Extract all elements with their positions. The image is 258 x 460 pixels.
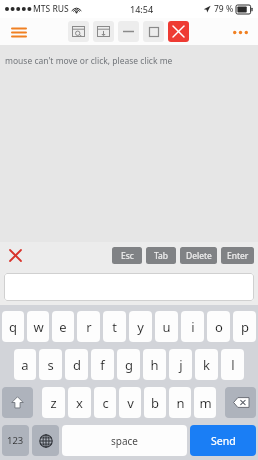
- staticText: w: [33, 318, 44, 336]
- button[interactable]: Delete: [180, 247, 217, 264]
- button[interactable]: u: [155, 311, 178, 342]
- button[interactable]: Menu: [8, 21, 30, 43]
- button[interactable]: t: [103, 311, 126, 342]
- staticText: f: [100, 356, 105, 374]
- button[interactable]: r: [77, 311, 100, 342]
- staticText: MTS RUS: [33, 3, 69, 15]
- button[interactable]: s: [39, 349, 62, 380]
- staticText: i: [191, 318, 195, 336]
- staticText: c: [102, 394, 109, 412]
- button[interactable]: l: [221, 349, 244, 380]
- button[interactable]: e: [52, 311, 74, 342]
- staticText: l: [231, 356, 235, 374]
- button[interactable]: g: [117, 349, 140, 380]
- staticText: Send: [211, 434, 236, 448]
- staticText: Esc: [121, 250, 134, 262]
- staticText: 123: [7, 434, 24, 447]
- button[interactable]: v: [119, 387, 141, 418]
- staticText: v: [127, 394, 134, 412]
- button[interactable]: k: [195, 349, 218, 380]
- staticText: b: [151, 394, 159, 412]
- button[interactable]: 123: [2, 425, 29, 456]
- button[interactable]: x: [68, 387, 91, 418]
- button[interactable]: d: [65, 349, 88, 380]
- staticText: q: [9, 318, 17, 336]
- button[interactable]: b: [144, 387, 166, 418]
- staticText: 79 %: [214, 3, 234, 15]
- button[interactable]: [4, 273, 254, 301]
- staticText: Delete: [186, 250, 212, 262]
- staticText: h: [150, 356, 159, 374]
- button[interactable]: c: [94, 387, 116, 418]
- staticText: s: [47, 356, 54, 374]
- button[interactable]: Esc: [112, 247, 142, 264]
- staticText: o: [215, 318, 223, 336]
- button[interactable]: j: [169, 349, 192, 380]
- button[interactable]: Shift: [2, 387, 33, 418]
- button[interactable]: q: [2, 311, 24, 342]
- staticText: x: [76, 394, 83, 412]
- button[interactable]: Close: [168, 21, 189, 42]
- button[interactable]: h: [143, 349, 166, 380]
- staticText: a: [21, 356, 29, 374]
- staticText: space: [111, 434, 138, 448]
- button[interactable]: Download window: [93, 21, 114, 42]
- button[interactable]: a: [14, 349, 36, 380]
- button[interactable]: Backspace: [225, 387, 256, 418]
- button[interactable]: Enter: [221, 247, 254, 264]
- button[interactable]: Tab: [146, 247, 176, 264]
- button[interactable]: Minimize: [118, 21, 139, 42]
- staticText: g: [125, 356, 133, 374]
- button[interactable]: n: [169, 387, 191, 418]
- staticText: u: [162, 318, 171, 336]
- staticText: e: [59, 318, 67, 336]
- staticText: n: [176, 394, 185, 412]
- button[interactable]: Maximize: [143, 21, 164, 42]
- button[interactable]: w: [27, 311, 49, 342]
- button[interactable]: y: [129, 311, 152, 342]
- staticText: 14:54: [130, 3, 154, 15]
- staticText: z: [50, 394, 57, 412]
- staticText: y: [137, 318, 144, 336]
- staticText: mouse can't move or click, please click …: [5, 55, 173, 67]
- staticText: j: [179, 356, 183, 374]
- button[interactable]: Send: [190, 425, 256, 456]
- button[interactable]: m: [194, 387, 216, 418]
- staticText: Tab: [154, 250, 169, 262]
- button[interactable]: Close keyboard: [6, 246, 24, 264]
- button[interactable]: p: [233, 311, 256, 342]
- button[interactable]: Zoom window: [68, 21, 89, 42]
- button[interactable]: i: [181, 311, 204, 342]
- button[interactable]: More options: [228, 20, 252, 44]
- staticText: r: [86, 318, 92, 336]
- button[interactable]: o: [207, 311, 230, 342]
- staticText: m: [199, 394, 212, 412]
- button[interactable]: z: [42, 387, 65, 418]
- staticText: p: [241, 318, 249, 336]
- button[interactable]: f: [91, 349, 114, 380]
- button[interactable]: Change keyboard: [32, 425, 59, 456]
- staticText: Enter: [227, 250, 249, 262]
- staticText: k: [203, 356, 210, 374]
- staticText: t: [112, 318, 117, 336]
- button[interactable]: space: [62, 425, 187, 456]
- staticText: d: [73, 356, 81, 374]
